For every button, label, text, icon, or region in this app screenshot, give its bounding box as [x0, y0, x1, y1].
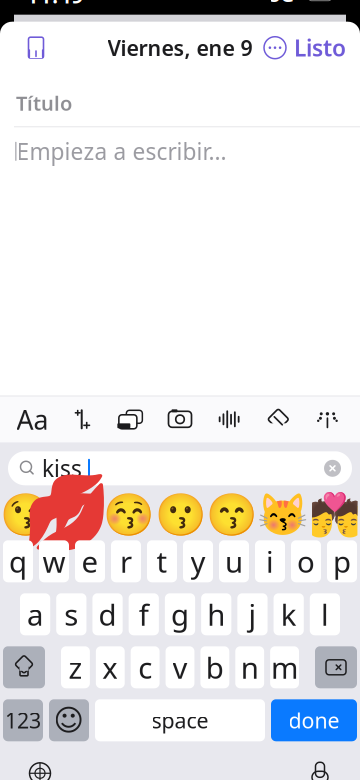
- staticText: z: [68, 648, 82, 687]
- staticText: Listo: [294, 33, 346, 63]
- staticText: i: [266, 542, 274, 581]
- button[interactable]: m: [270, 646, 299, 688]
- staticText: 💋: [22, 471, 112, 553]
- button[interactable]: z: [61, 646, 90, 688]
- button[interactable]: Emoji: [49, 699, 89, 741]
- staticText: j: [248, 595, 256, 634]
- button[interactable]: h: [201, 593, 231, 635]
- button[interactable]: kiss: [0, 442, 360, 492]
- button[interactable]: x: [96, 646, 125, 688]
- staticText: Aa: [17, 402, 49, 437]
- button[interactable]: space: [95, 699, 265, 741]
- button[interactable]: Efectos: [303, 397, 352, 441]
- button[interactable]: Marcador: [14, 26, 58, 70]
- button[interactable]: q: [3, 540, 33, 582]
- button[interactable]: n: [235, 646, 264, 688]
- staticText: f: [139, 595, 149, 634]
- staticText: s: [64, 595, 78, 634]
- button[interactable]: Emoji: [154, 492, 206, 539]
- button[interactable]: Audio: [205, 397, 254, 441]
- staticText: done: [288, 706, 339, 734]
- button[interactable]: s: [56, 593, 86, 635]
- button[interactable]: Borrar: [315, 646, 357, 688]
- button[interactable]: o: [291, 540, 321, 582]
- button[interactable]: r: [111, 540, 141, 582]
- button[interactable]: l: [310, 593, 340, 635]
- button[interactable]: w: [39, 540, 69, 582]
- button[interactable]: Formato de texto: [8, 397, 57, 441]
- staticText: 😙: [206, 492, 257, 539]
- staticText: l: [321, 595, 329, 634]
- staticText: o: [297, 542, 315, 581]
- staticText: y: [190, 542, 205, 581]
- button[interactable]: Ubicación: [254, 397, 303, 441]
- button[interactable]: Cámara: [155, 397, 204, 441]
- button[interactable]: f: [129, 593, 159, 635]
- button[interactable]: Marcado: [57, 397, 106, 441]
- button[interactable]: t: [147, 540, 177, 582]
- staticText: 😚: [103, 492, 154, 539]
- staticText: 123: [5, 706, 41, 734]
- button[interactable]: c: [131, 646, 160, 688]
- staticText: w: [42, 542, 65, 581]
- staticText: 5G+: [269, 0, 305, 7]
- staticText: k: [281, 595, 297, 634]
- button[interactable]: e: [75, 540, 105, 582]
- staticText: b: [206, 648, 224, 687]
- staticText: m: [271, 648, 298, 687]
- button[interactable]: i: [255, 540, 285, 582]
- button[interactable]: Emoji: [103, 492, 154, 539]
- staticText: Título: [16, 90, 72, 116]
- staticText: kiss: [42, 453, 82, 483]
- staticText: 😗: [154, 492, 205, 539]
- button[interactable]: Emoji: [206, 492, 257, 539]
- staticText: 💋: [52, 492, 103, 539]
- button[interactable]: Más opciones: [256, 26, 294, 70]
- staticText: 💏: [309, 492, 360, 539]
- button[interactable]: Emoji: [257, 492, 308, 539]
- button[interactable]: u: [219, 540, 249, 582]
- button[interactable]: d: [92, 593, 123, 635]
- staticText: q: [9, 542, 27, 581]
- staticText: g: [171, 595, 189, 634]
- staticText: p: [333, 542, 351, 581]
- staticText: 😘: [0, 492, 51, 539]
- staticText: u: [225, 542, 243, 581]
- staticText: e: [81, 542, 98, 581]
- button[interactable]: v: [166, 646, 194, 688]
- button[interactable]: Emoji: [0, 492, 51, 539]
- button[interactable]: Mayúsculas: [3, 646, 45, 688]
- staticText: x: [102, 648, 118, 687]
- staticText: t: [156, 542, 167, 581]
- staticText: Empieza a escribir...: [17, 136, 227, 166]
- staticText: r: [120, 542, 132, 581]
- staticText: d: [99, 595, 117, 634]
- staticText: c: [138, 648, 152, 687]
- button[interactable]: Fotos: [106, 397, 155, 441]
- button[interactable]: Listo: [294, 26, 346, 70]
- button[interactable]: p: [327, 540, 357, 582]
- button[interactable]: b: [200, 646, 229, 688]
- staticText: Viernes, ene 9: [107, 33, 252, 62]
- staticText: ☺: [53, 704, 84, 737]
- staticText: h: [207, 595, 225, 634]
- button[interactable]: k: [274, 593, 304, 635]
- staticText: 😽: [257, 492, 308, 539]
- button[interactable]: Emoji: [309, 492, 360, 539]
- staticText: 11:49: [26, 0, 84, 10]
- staticText: v: [172, 648, 187, 687]
- staticText: space: [151, 706, 208, 734]
- staticText: a: [27, 595, 43, 634]
- button[interactable]: Dictado: [298, 751, 342, 780]
- button[interactable]: Cambiar teclado: [18, 751, 62, 780]
- button[interactable]: g: [165, 593, 195, 635]
- button[interactable]: y: [183, 540, 213, 582]
- button[interactable]: done: [271, 699, 357, 741]
- button[interactable]: 123: [3, 699, 43, 741]
- staticText: n: [241, 648, 259, 687]
- button[interactable]: j: [237, 593, 267, 635]
- button[interactable]: a: [20, 593, 50, 635]
- button[interactable]: Emoji: [51, 492, 103, 539]
